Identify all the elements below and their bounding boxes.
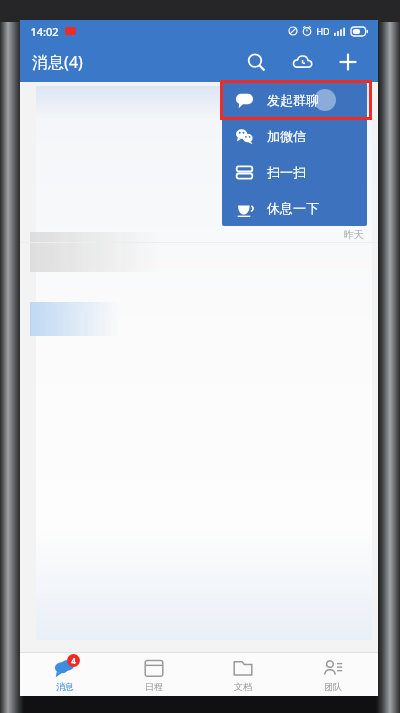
button[interactable]: 休息一下 — [222, 190, 367, 226]
staticText: 消息 — [56, 681, 74, 692]
button[interactable]: 4 — [20, 653, 109, 696]
button[interactable]: 加微信 — [222, 118, 367, 154]
button[interactable]: 扫一扫 — [222, 154, 367, 190]
button[interactable]: Search — [238, 44, 274, 80]
staticText: 加微信 — [267, 128, 306, 144]
staticText: 休息一下 — [267, 200, 319, 216]
staticText: 昨天 — [344, 228, 364, 241]
button[interactable]: Add — [330, 44, 366, 80]
staticText: 消息(4) — [32, 51, 83, 73]
staticText: 扫一扫 — [267, 164, 306, 180]
staticText: 文档 — [234, 681, 252, 692]
staticText: 14:02 — [30, 24, 59, 39]
staticText: 4 — [71, 655, 76, 666]
button[interactable]: 文档 — [198, 653, 288, 696]
button[interactable]: 团队 — [288, 653, 378, 696]
staticText: 发起群聊 — [267, 92, 319, 108]
staticText: 日程 — [145, 681, 163, 692]
staticText: 团队 — [324, 681, 342, 692]
staticText: HD — [316, 25, 330, 37]
button[interactable]: Recent cloud files — [284, 44, 320, 80]
button[interactable]: 日程 — [109, 653, 198, 696]
button[interactable]: 发起群聊 — [222, 82, 367, 118]
